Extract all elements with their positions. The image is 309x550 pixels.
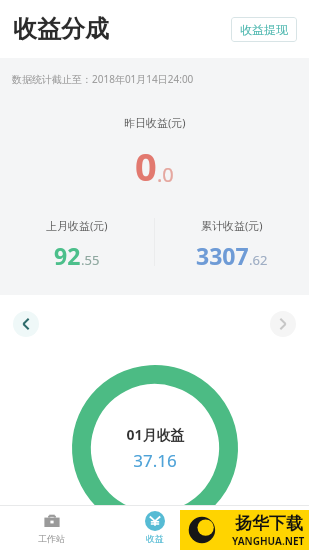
staticText: .55 [81,251,100,269]
staticText: .0 [157,161,174,188]
staticText: 收益分成 [13,14,109,44]
button[interactable]: 收益提现 [231,17,297,42]
button[interactable]: 收益 [103,505,206,550]
button[interactable]: Previous month [13,311,39,337]
staticText: .62 [249,251,268,269]
staticText: 扬华下载 [235,513,303,534]
button[interactable]: 工作站 [0,505,103,550]
staticText: 昨日收益(元) [124,115,186,130]
staticText: 92 [54,240,81,271]
staticText: 收益提现 [240,22,288,37]
staticText: 3307 [196,240,249,271]
staticText: YANGHUA.NET [232,534,305,548]
staticText: 01月收益 [126,425,185,444]
staticText: 37.16 [133,449,177,472]
staticText: 累计收益(元) [201,218,263,233]
staticText: 0 [135,140,157,192]
staticText: 上月收益(元) [46,218,108,233]
staticText: 收益 [146,533,164,544]
staticText: 数据统计截止至：2018年01月14日24:00 [12,72,194,86]
staticText: 工作站 [38,533,65,544]
button[interactable]: Next month [270,311,296,337]
